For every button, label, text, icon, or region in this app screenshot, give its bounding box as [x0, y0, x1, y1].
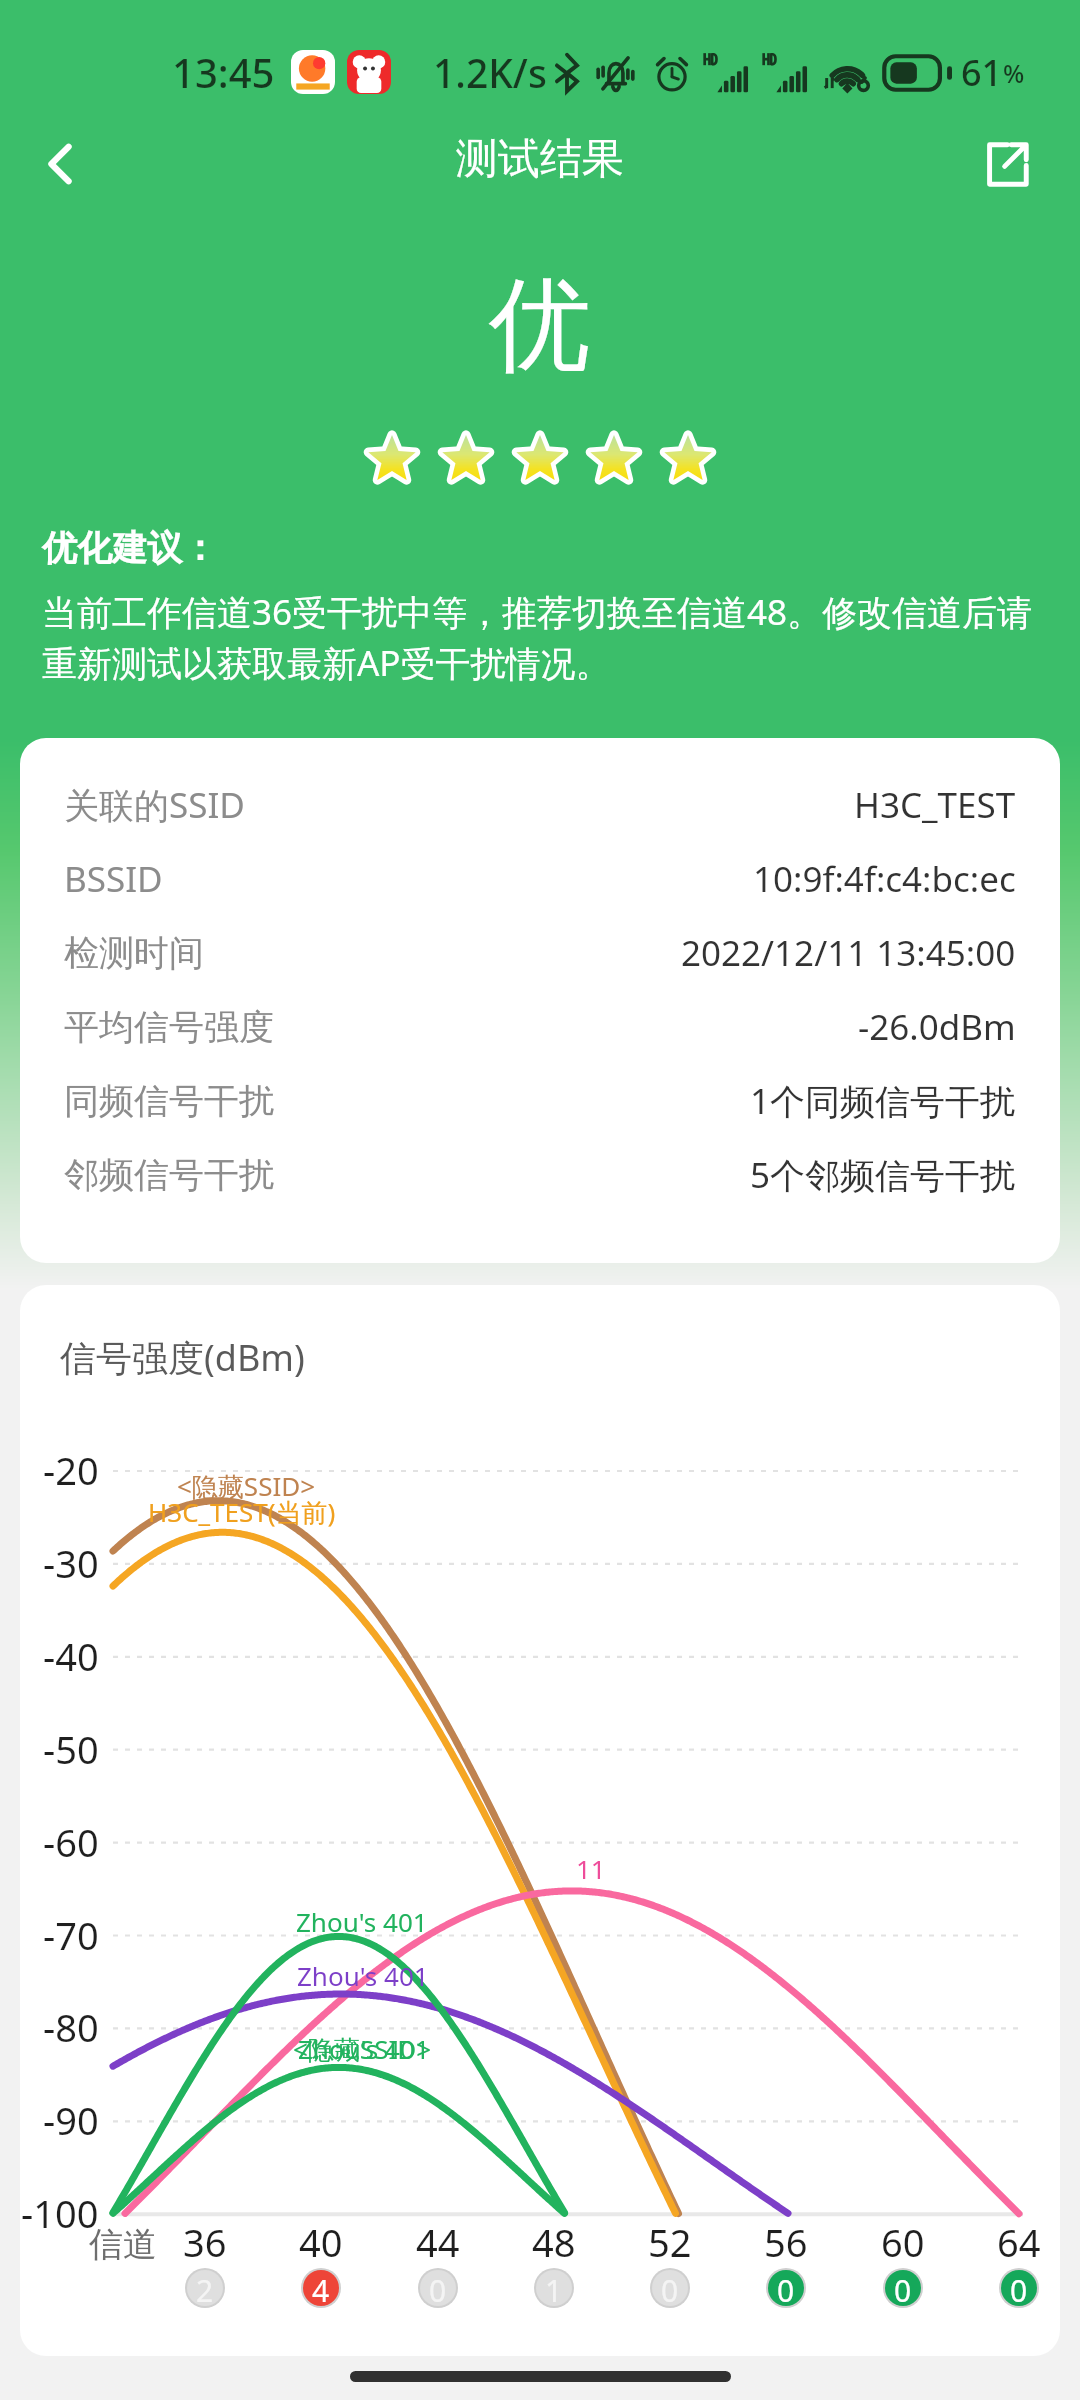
staticText: 5个邻频信号干扰: [750, 1151, 1016, 1199]
button[interactable]: Back: [14, 118, 106, 210]
staticText: 52: [648, 2216, 692, 2268]
button[interactable]: Share: [960, 118, 1052, 210]
staticText: 测试结果: [456, 133, 624, 186]
staticText: 2022/12/11 13:45:00: [681, 929, 1016, 977]
staticText: 同频信号干扰: [64, 1079, 274, 1123]
staticText: -60: [43, 1816, 99, 1868]
staticText: 0: [894, 2270, 912, 2306]
staticText: BSSID: [64, 855, 163, 903]
staticText: 检测时间: [64, 931, 204, 975]
staticText: -20: [43, 1444, 99, 1496]
staticText: 优: [489, 262, 591, 390]
staticText: H3C_TEST: [854, 781, 1016, 829]
staticText: 10:9f:4f:c4:bc:ec: [753, 855, 1016, 903]
staticText: -70: [43, 1909, 99, 1961]
staticText: -50: [43, 1723, 99, 1775]
staticText: -40: [43, 1630, 99, 1682]
staticText: 48: [532, 2216, 576, 2268]
staticText: 1.2K/s: [433, 46, 547, 99]
staticText: 13:45: [172, 45, 275, 99]
staticText: 11: [576, 1851, 606, 1886]
staticText: 邻频信号干扰: [64, 1153, 274, 1197]
staticText: 44: [416, 2216, 460, 2268]
staticText: -90: [43, 2094, 99, 2146]
staticText: 36: [183, 2216, 227, 2268]
button[interactable]: 关联的SSID: [20, 768, 1060, 842]
staticText: 信道: [89, 2223, 157, 2266]
staticText: 当前工作信道36受干扰中等，推荐切换至信道48。修改信道后请重新测试以获取最新A…: [42, 588, 1034, 687]
staticText: -80: [43, 2001, 99, 2053]
staticText: 2: [196, 2270, 214, 2306]
staticText: <隐藏SSID>: [293, 2031, 432, 2067]
staticText: 优化建议：: [42, 526, 217, 570]
staticText: -100: [21, 2187, 99, 2239]
staticText: 56: [764, 2216, 808, 2268]
staticText: 关联的SSID: [64, 781, 245, 829]
staticText: %: [1003, 56, 1025, 90]
staticText: Zhou's 401: [297, 1958, 429, 1993]
staticText: Zhou's 401: [296, 1904, 428, 1939]
staticText: -30: [43, 1537, 99, 1589]
button[interactable]: 邻频信号干扰: [20, 1138, 1060, 1212]
button[interactable]: 平均信号强度: [20, 990, 1060, 1064]
staticText: 0: [777, 2270, 795, 2306]
staticText: 信号强度(dBm): [60, 1333, 305, 1382]
staticText: 0: [661, 2270, 679, 2306]
staticText: H3C_TEST(当前): [148, 1494, 336, 1530]
staticText: 1: [545, 2270, 563, 2306]
staticText: 61: [961, 48, 1003, 97]
staticText: 0: [429, 2270, 447, 2306]
staticText: Zhou's 401: [298, 2031, 430, 2066]
staticText: 0: [1010, 2270, 1028, 2306]
staticText: 64: [997, 2216, 1041, 2268]
staticText: 1个同频信号干扰: [750, 1077, 1016, 1125]
button[interactable]: BSSID: [20, 842, 1060, 916]
staticText: 4: [312, 2270, 330, 2306]
staticText: 平均信号强度: [64, 1005, 274, 1049]
staticText: -26.0dBm: [858, 1003, 1016, 1051]
staticText: 40: [299, 2216, 343, 2268]
staticText: 60: [881, 2216, 925, 2268]
button[interactable]: 同频信号干扰: [20, 1064, 1060, 1138]
staticText: <隐藏SSID>: [177, 1468, 316, 1504]
button[interactable]: 检测时间: [20, 916, 1060, 990]
